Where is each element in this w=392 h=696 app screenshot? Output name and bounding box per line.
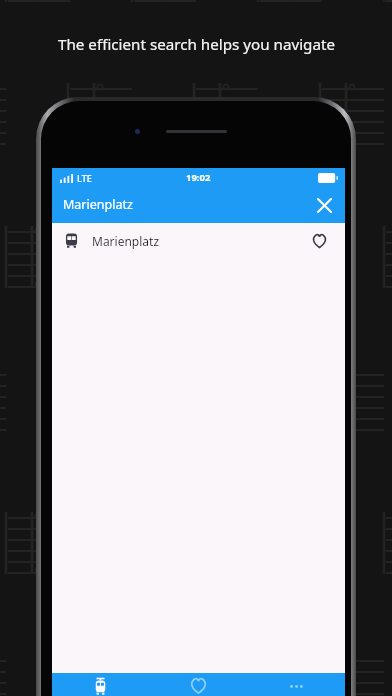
staticText: Marienplatz <box>92 233 160 249</box>
button[interactable]: Favorites <box>149 673 247 696</box>
staticText: LTE <box>77 172 92 184</box>
staticText: 19:02 <box>186 171 211 184</box>
staticText: Marienplatz <box>63 196 133 213</box>
button[interactable]: Marienplatz <box>52 223 345 258</box>
button[interactable]: Stations <box>52 673 149 696</box>
staticText: The efficient search helps you navigate <box>58 34 335 55</box>
button[interactable]: Clear search <box>309 190 339 220</box>
button[interactable]: Add to favorites <box>305 227 333 255</box>
button[interactable]: More <box>247 673 345 696</box>
